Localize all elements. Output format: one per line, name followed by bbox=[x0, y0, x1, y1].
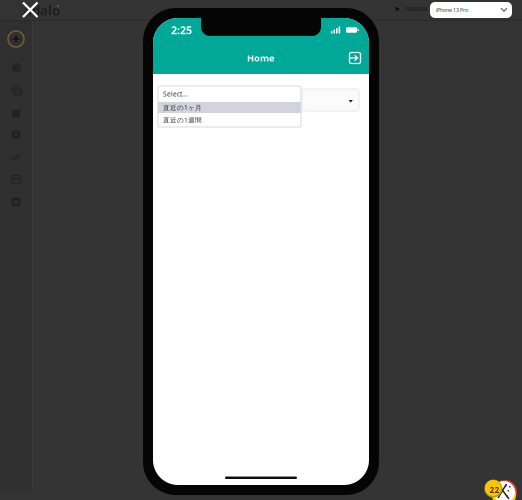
button[interactable]: Branding bbox=[0, 56, 32, 78]
staticText: 直近の1週間 bbox=[163, 116, 202, 124]
button[interactable]: Sign in bbox=[346, 49, 364, 67]
button[interactable]: 直近の1週間 bbox=[158, 113, 301, 127]
staticText: Select... bbox=[163, 90, 188, 98]
button[interactable]: Analytics bbox=[0, 168, 32, 191]
button[interactable]: Marketplace bbox=[0, 191, 32, 213]
button[interactable]: 直近の1ヶ月 bbox=[158, 102, 301, 113]
staticText: iPhone 13 Pro bbox=[436, 6, 468, 14]
staticText: adalo bbox=[24, 1, 60, 19]
button[interactable]: PREVIEW bbox=[389, 0, 428, 20]
staticText: 2:25 bbox=[171, 23, 192, 37]
button[interactable]: Help, 22 unread bbox=[464, 463, 510, 500]
button[interactable]: Screens bbox=[0, 78, 32, 100]
button[interactable]: Select period bbox=[302, 89, 359, 111]
button[interactable]: Select... bbox=[158, 86, 301, 102]
button[interactable]: Settings bbox=[0, 123, 32, 146]
staticText: 直近の1ヶ月 bbox=[163, 103, 202, 112]
button[interactable]: iPhone 13 Pro bbox=[430, 2, 512, 18]
staticText: Home bbox=[247, 52, 275, 64]
staticText: 22 bbox=[489, 484, 499, 495]
button[interactable]: Add bbox=[0, 26, 32, 52]
button[interactable]: Database bbox=[0, 100, 32, 123]
staticText: PREVIEW bbox=[405, 5, 427, 13]
button[interactable]: Close editor bbox=[0, 0, 58, 20]
